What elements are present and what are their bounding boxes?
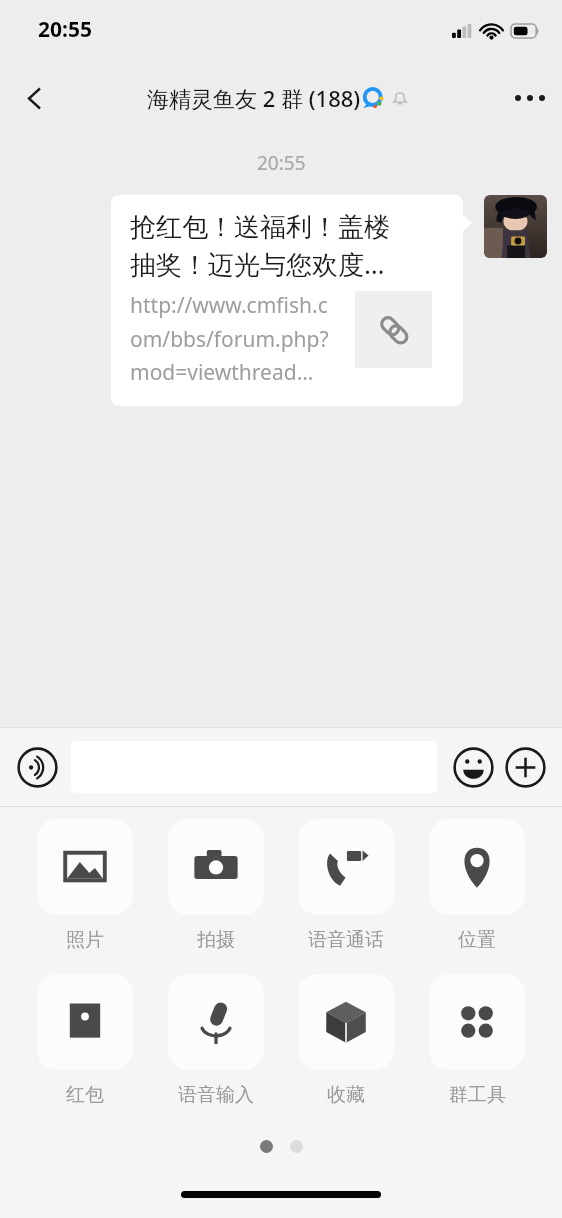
staticText: 抢红包！送福利！盖楼 抽奖！迈光与您欢度…: [130, 211, 390, 282]
staticText: 位置: [458, 928, 496, 952]
staticText: 20:55: [257, 150, 306, 176]
button[interactable]: 语音通话: [290, 819, 402, 952]
button[interactable]: 收藏: [290, 974, 402, 1107]
button[interactable]: 语音输入: [160, 974, 272, 1107]
button[interactable]: 照片: [29, 819, 141, 952]
button[interactable]: More options: [504, 72, 556, 124]
staticText: 海精灵鱼友 2 群 (188): [147, 83, 361, 113]
button[interactable]: 群工具: [421, 974, 533, 1107]
staticText: 收藏: [327, 1083, 365, 1107]
staticText: http://www.cmfish.c om/bbs/forum.php? mo…: [130, 291, 342, 386]
button[interactable]: 抢红包！送福利！盖楼 抽奖！迈光与您欢度…: [111, 195, 463, 406]
button[interactable]: More functions: [502, 744, 548, 790]
staticText: 语音通话: [308, 928, 384, 952]
staticText: 20:55: [38, 15, 92, 44]
staticText: 群工具: [449, 1083, 506, 1107]
button[interactable]: Emoji: [450, 744, 496, 790]
button[interactable]: 拍摄: [160, 819, 272, 952]
button[interactable]: Avatar: [484, 195, 547, 258]
staticText: 语音输入: [178, 1083, 254, 1107]
staticText: 红包: [66, 1083, 104, 1107]
button[interactable]: Back: [8, 72, 60, 124]
staticText: 拍摄: [197, 928, 235, 952]
staticText: 照片: [66, 928, 104, 952]
button[interactable]: 位置: [421, 819, 533, 952]
button[interactable]: 红包: [29, 974, 141, 1107]
button[interactable]: Voice message: [14, 744, 60, 790]
